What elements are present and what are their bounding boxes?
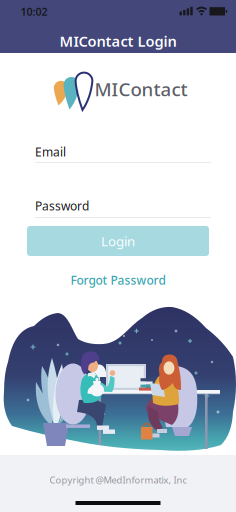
staticText: Email [35, 144, 66, 160]
staticText: Copyright @MedInformatix, Inc [49, 474, 186, 486]
staticText: Forgot Password [70, 272, 165, 288]
button[interactable]: Email [35, 144, 211, 163]
staticText: MIContact [94, 77, 187, 101]
staticText: Password [35, 198, 89, 214]
button[interactable]: Forgot Password [62, 268, 173, 292]
staticText: MIContact Login [59, 31, 176, 51]
staticText: 10:02 [20, 4, 47, 19]
staticText: Login [101, 232, 135, 250]
button[interactable]: Password [35, 198, 211, 218]
button[interactable]: Login [27, 226, 209, 256]
